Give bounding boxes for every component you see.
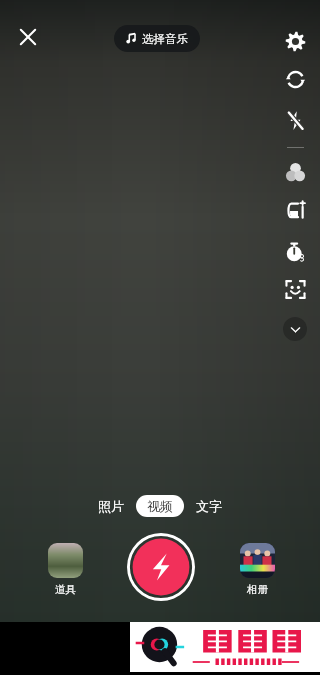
staticText: 视频 [147, 498, 173, 514]
staticText: 选择音乐 [142, 32, 188, 46]
button[interactable]: 美化 [279, 194, 311, 226]
button[interactable]: 视频 [136, 495, 184, 517]
button[interactable]: 照片 [94, 495, 128, 517]
button[interactable]: 设置 [279, 25, 311, 57]
button[interactable]: 滤镜 [279, 156, 311, 188]
button[interactable]: 闪光灯关闭 [279, 104, 311, 136]
button[interactable]: 分段拍 [140, 641, 176, 656]
staticText: 相册 [247, 583, 268, 596]
staticText: 文字 [196, 498, 222, 514]
button[interactable]: 收起 [283, 317, 307, 341]
button[interactable]: 倒计时 [279, 236, 311, 268]
button[interactable]: 人脸识别 [279, 273, 311, 305]
staticText: 照片 [98, 498, 124, 514]
button[interactable]: 翻转镜头 [279, 63, 311, 95]
button[interactable]: 相册 [232, 543, 282, 596]
button[interactable]: 道具 [40, 543, 90, 596]
button[interactable]: 开始录制 [127, 533, 195, 601]
button[interactable]: 文字 [192, 495, 226, 517]
staticText: 道具 [55, 583, 76, 596]
button[interactable]: 关闭 [10, 19, 46, 55]
button[interactable]: 选择音乐 [114, 25, 200, 52]
